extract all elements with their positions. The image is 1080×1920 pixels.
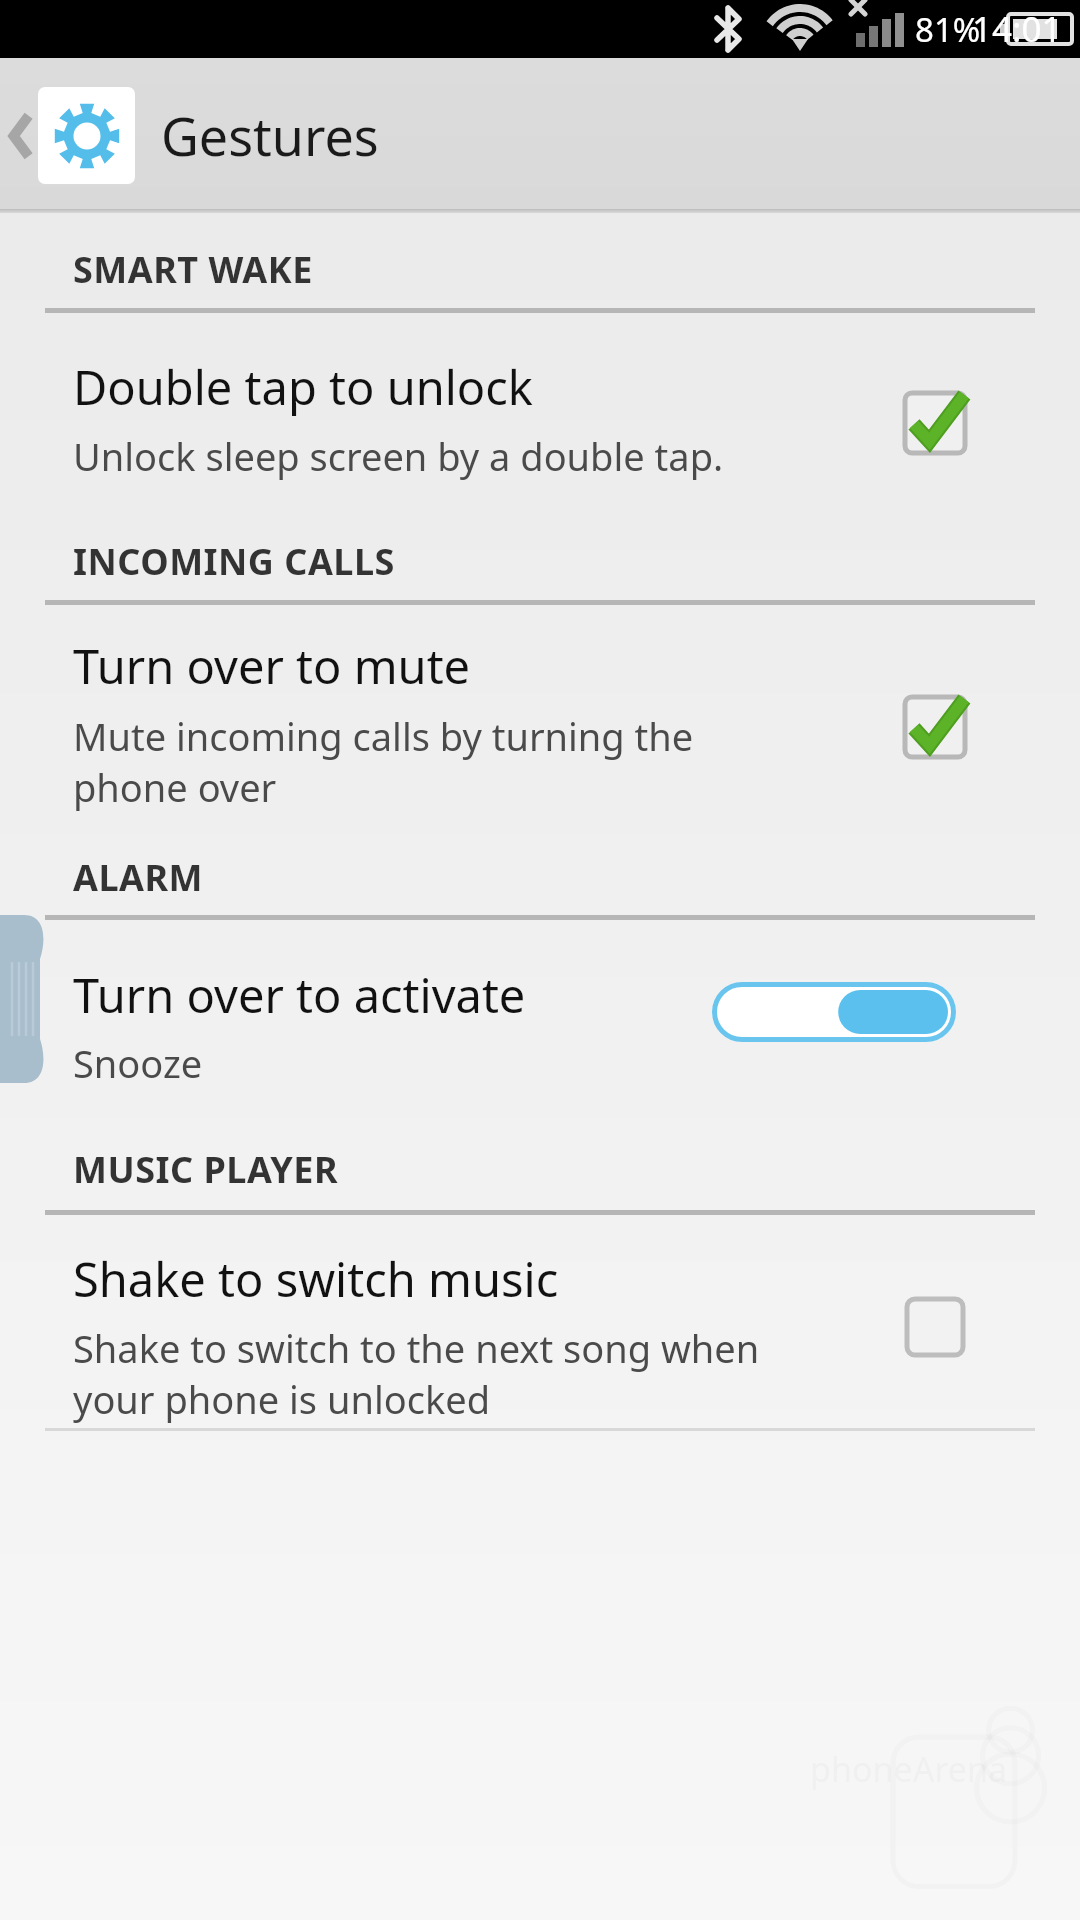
- staticText: Turn over to mute: [73, 634, 471, 698]
- staticText: phone over: [73, 761, 277, 813]
- staticText: INCOMING CALLS: [73, 537, 395, 586]
- button[interactable]: [0, 618, 1080, 828]
- staticText: 14:01: [972, 5, 1062, 53]
- button[interactable]: Enabled: [900, 692, 970, 762]
- staticText: Shake to switch music: [73, 1247, 559, 1311]
- button[interactable]: [0, 1228, 1080, 1440]
- button[interactable]: [0, 933, 1080, 1104]
- staticText: Snooze: [73, 1037, 203, 1089]
- staticText: your phone is unlocked: [73, 1373, 491, 1425]
- staticText: SMART WAKE: [73, 245, 313, 294]
- button[interactable]: Gestures: [38, 87, 379, 184]
- button[interactable]: Back: [0, 96, 44, 176]
- staticText: Mute incoming calls by turning the: [73, 710, 694, 762]
- staticText: ALARM: [73, 853, 204, 902]
- button[interactable]: [0, 326, 1080, 497]
- staticText: MUSIC PLAYER: [73, 1145, 339, 1194]
- staticText: Unlock sleep screen by a double tap.: [73, 430, 724, 482]
- staticText: Shake to switch to the next song when: [73, 1322, 760, 1374]
- staticText: 81%: [915, 7, 981, 52]
- button[interactable]: Enabled: [900, 388, 970, 458]
- staticText: Gestures: [161, 100, 379, 171]
- button[interactable]: Disabled: [900, 1292, 970, 1362]
- staticText: Turn over to activate: [73, 963, 526, 1027]
- staticText: Double tap to unlock: [73, 355, 533, 419]
- button[interactable]: Turn over to activate toggle: [712, 982, 956, 1042]
